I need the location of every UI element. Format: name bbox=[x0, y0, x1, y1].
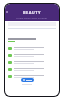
button[interactable] bbox=[8, 66, 56, 73]
staticText: BEAUTY bbox=[23, 10, 41, 15]
button[interactable] bbox=[8, 52, 56, 59]
button[interactable] bbox=[21, 78, 34, 82]
staticText: Lorem ipsum dolor sit amet bbox=[16, 16, 48, 19]
button[interactable] bbox=[8, 59, 56, 66]
button[interactable] bbox=[8, 73, 56, 80]
button[interactable] bbox=[8, 45, 56, 52]
